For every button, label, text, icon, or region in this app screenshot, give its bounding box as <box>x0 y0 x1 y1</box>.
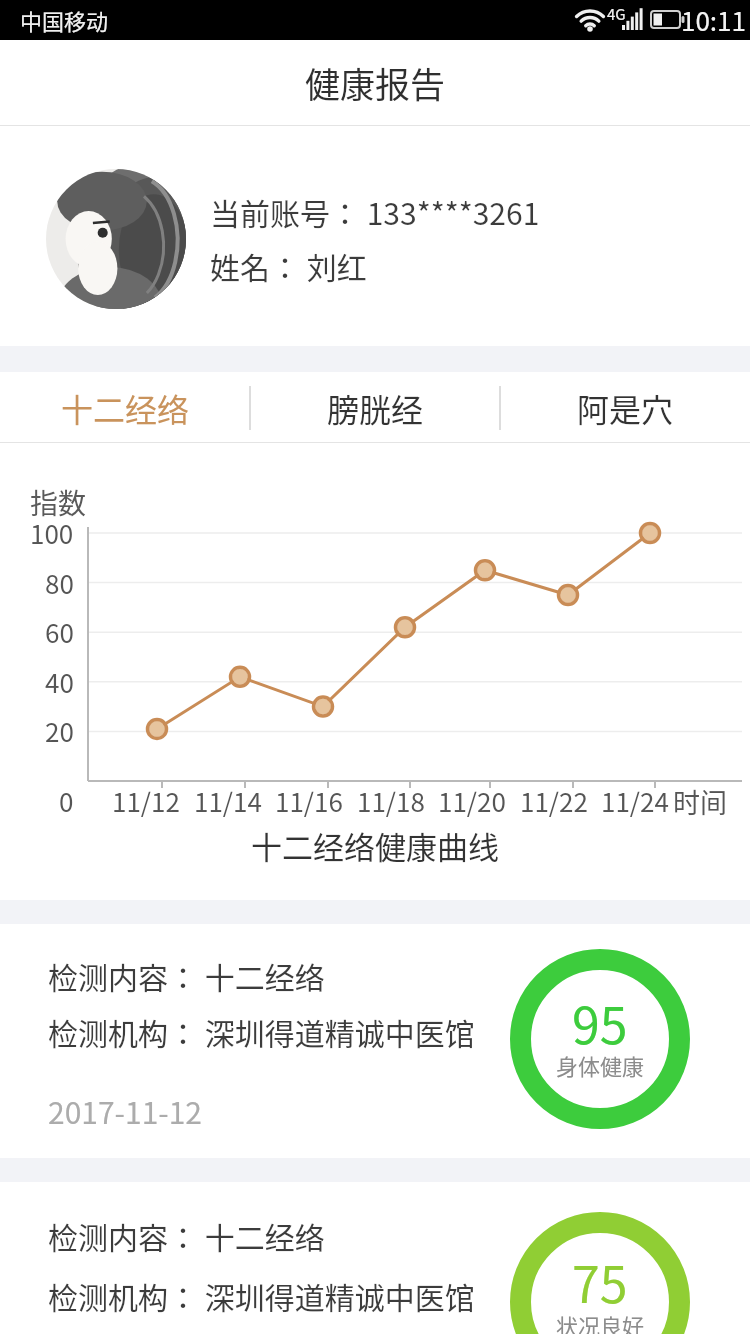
staticText: 检测内容： 十二经络 <box>48 1214 325 1257</box>
staticText: 11/22 <box>520 782 588 820</box>
staticText: 十二经络 <box>61 385 190 431</box>
staticText: 95 <box>572 986 628 1046</box>
button[interactable]: 十二经络 <box>0 372 250 443</box>
staticText: 十二经络健康曲线 <box>251 823 499 868</box>
staticText: 中国移动 <box>20 4 109 36</box>
staticText: 11/12 <box>112 782 180 820</box>
staticText: 11/14 <box>194 782 262 820</box>
staticText: 20 <box>45 712 74 750</box>
staticText: 10:11 <box>681 1 746 39</box>
staticText: 状况良好 <box>556 1309 645 1334</box>
staticText: 0 <box>59 782 74 820</box>
staticText: 阿是穴 <box>577 385 674 431</box>
staticText: 40 <box>45 663 74 701</box>
staticText: 指数 <box>30 482 87 523</box>
staticText: 膀胱经 <box>327 385 424 431</box>
staticText: 11/18 <box>357 782 425 820</box>
staticText: 检测内容： 十二经络 <box>48 954 325 997</box>
button[interactable]: 阿是穴 <box>500 372 750 443</box>
staticText: 检测机构： 深圳得道精诚中医馆 <box>48 1010 475 1053</box>
button[interactable]: 检测内容： 十二经络 <box>0 924 750 1158</box>
staticText: 80 <box>45 564 74 602</box>
staticText: 100 <box>30 514 74 552</box>
staticText: 4G <box>607 3 626 23</box>
staticText: 检测机构： 深圳得道精诚中医馆 <box>48 1274 475 1317</box>
staticText: 11/20 <box>438 782 506 820</box>
staticText: 11/24 <box>601 782 669 820</box>
staticText: 2017-11-12 <box>48 1089 203 1132</box>
staticText: 健康报告 <box>305 57 446 108</box>
staticText: 11/16 <box>275 782 343 820</box>
staticText: 姓名： 刘红 <box>210 244 367 287</box>
staticText: 身体健康 <box>556 1049 645 1081</box>
staticText: 时间 <box>673 782 727 821</box>
staticText: 75 <box>572 1245 628 1305</box>
staticText: 60 <box>45 613 74 651</box>
button[interactable]: 检测内容： 十二经络 <box>0 1182 750 1334</box>
staticText: 当前账号： 133****3261 <box>210 190 540 233</box>
button[interactable]: 膀胱经 <box>250 372 500 443</box>
